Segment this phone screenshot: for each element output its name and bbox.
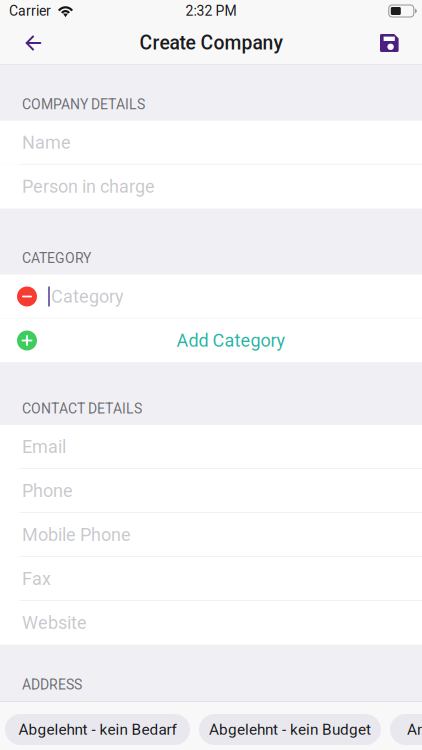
button[interactable]: Name bbox=[0, 121, 422, 165]
staticText: Name bbox=[22, 132, 71, 153]
staticText: Website bbox=[22, 612, 87, 633]
staticText: 2:32 PM bbox=[185, 3, 236, 19]
staticText: Email bbox=[22, 436, 66, 457]
button[interactable]: Back bbox=[0, 22, 56, 64]
staticText: Fax bbox=[22, 568, 51, 589]
button[interactable]: Andere bbox=[390, 714, 422, 745]
staticText: Add Category bbox=[176, 330, 285, 351]
button[interactable]: Add Category bbox=[0, 318, 422, 362]
button[interactable]: Save bbox=[366, 22, 422, 64]
staticText: Phone bbox=[22, 480, 73, 501]
staticText: Create Company bbox=[139, 32, 282, 54]
staticText: Abgelehnt - kein Bedarf bbox=[18, 720, 176, 738]
staticText: Abgelehnt - kein Budget bbox=[209, 720, 371, 738]
button[interactable]: Fax bbox=[0, 557, 422, 601]
staticText: CONTACT DETAILS bbox=[22, 400, 142, 417]
button[interactable]: Abgelehnt - kein Bedarf bbox=[5, 714, 190, 745]
staticText: Person in charge bbox=[22, 176, 155, 197]
staticText: CATEGORY bbox=[22, 250, 91, 266]
button[interactable]: Email bbox=[0, 425, 422, 469]
staticText: Category bbox=[51, 286, 124, 307]
button[interactable]: Abgelehnt - kein Budget bbox=[199, 714, 381, 745]
staticText: Carrier bbox=[9, 3, 51, 19]
staticText: Andere bbox=[407, 720, 422, 738]
button[interactable]: Phone bbox=[0, 469, 422, 513]
staticText: Mobile Phone bbox=[22, 524, 131, 545]
button[interactable]: Person in charge bbox=[0, 165, 422, 209]
button[interactable]: Mobile Phone bbox=[0, 513, 422, 557]
staticText: ADDRESS bbox=[22, 676, 82, 693]
button[interactable]: Category bbox=[0, 274, 422, 318]
button[interactable]: Website bbox=[0, 601, 422, 645]
staticText: COMPANY DETAILS bbox=[22, 96, 145, 113]
